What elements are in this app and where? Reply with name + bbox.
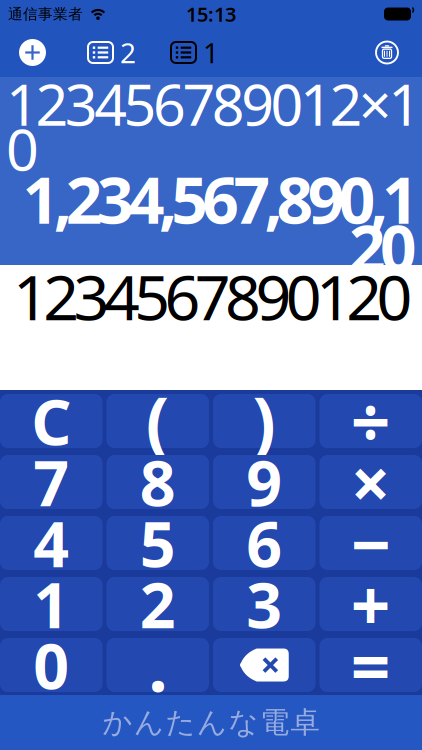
- staticText: =: [351, 619, 391, 711]
- staticText: 1: [203, 34, 219, 71]
- button[interactable]: 6: [213, 516, 315, 570]
- staticText: 0: [33, 623, 69, 707]
- button[interactable]: [19, 39, 46, 66]
- button[interactable]: 0: [0, 638, 102, 692]
- staticText: 15:13: [186, 1, 236, 27]
- staticText: ×: [351, 436, 391, 528]
- staticText: ÷: [351, 375, 391, 467]
- staticText: 7: [33, 440, 69, 524]
- staticText: +: [351, 558, 391, 650]
- staticText: 通信事業者: [8, 5, 83, 23]
- button[interactable]: .: [106, 638, 209, 692]
- staticText: 8: [140, 440, 176, 524]
- button[interactable]: 1: [0, 577, 102, 631]
- staticText: .: [148, 619, 167, 711]
- staticText: C: [31, 379, 71, 463]
- staticText: 1234567890120: [13, 254, 413, 338]
- button[interactable]: [376, 41, 398, 63]
- button[interactable]: 2: [88, 34, 136, 71]
- button[interactable]: (: [106, 394, 209, 448]
- button[interactable]: 9: [213, 455, 315, 509]
- button[interactable]: 2: [106, 577, 209, 631]
- button[interactable]: ÷: [319, 394, 422, 448]
- staticText: 6: [246, 501, 282, 585]
- staticText: 9: [246, 440, 282, 524]
- staticText: 20: [349, 204, 417, 289]
- button[interactable]: ): [213, 394, 315, 448]
- button[interactable]: C: [0, 394, 102, 448]
- staticText: 5: [140, 501, 176, 585]
- staticText: −: [351, 497, 391, 589]
- button[interactable]: +: [319, 577, 422, 631]
- button[interactable]: 5: [106, 516, 209, 570]
- button[interactable]: 4: [0, 516, 102, 570]
- staticText: 3: [246, 562, 282, 646]
- staticText: (: [146, 375, 170, 467]
- button[interactable]: 7: [0, 455, 102, 509]
- button[interactable]: 1: [171, 34, 219, 71]
- staticText: 123456789012×1: [6, 65, 421, 141]
- button[interactable]: 3: [213, 577, 315, 631]
- button[interactable]: −: [319, 516, 422, 570]
- staticText: 0: [6, 110, 39, 186]
- staticText: 2: [140, 562, 176, 646]
- button[interactable]: =: [319, 638, 422, 692]
- staticText: 1,234,567,890,1: [23, 156, 419, 241]
- staticText: かんたんな電卓: [102, 704, 319, 740]
- staticText: 4: [33, 501, 69, 585]
- staticText: 1: [33, 562, 69, 646]
- staticText: 2: [120, 34, 136, 71]
- button[interactable]: 8: [106, 455, 209, 509]
- staticText: ): [252, 375, 276, 467]
- button[interactable]: かんたんな電卓: [0, 695, 422, 750]
- button[interactable]: [213, 638, 315, 692]
- button[interactable]: ×: [319, 455, 422, 509]
